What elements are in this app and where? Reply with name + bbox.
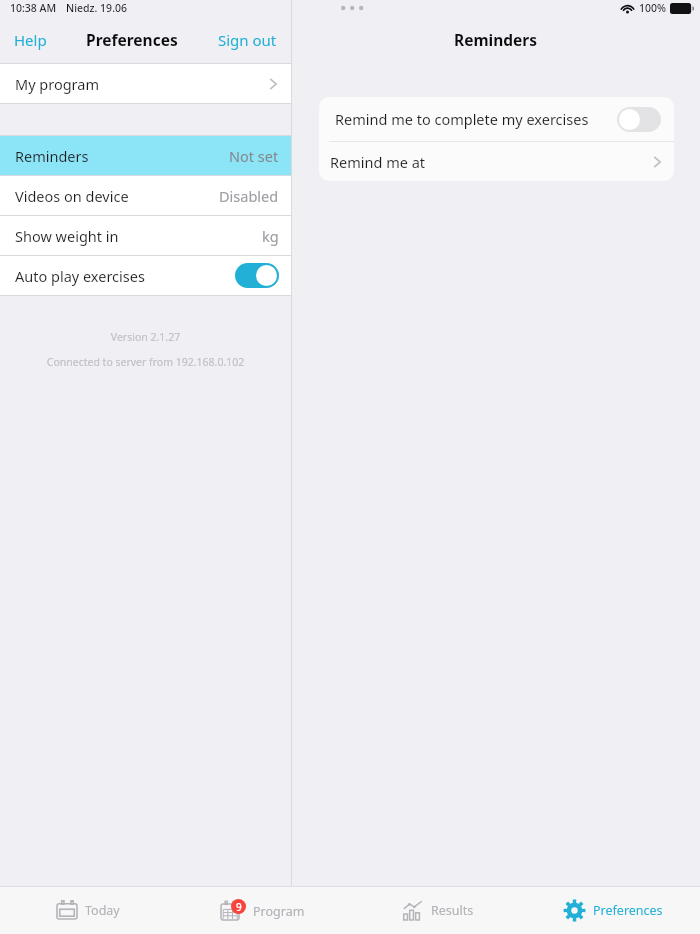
button[interactable]: Videos on device [0,176,291,215]
staticText: Reminders [454,29,538,50]
staticText: Connected to server from 192.168.0.102 [0,355,291,369]
staticText: My program [15,74,100,94]
staticText: Sign out [218,30,277,50]
button[interactable]: Remind me at [319,142,674,181]
staticText: Today [85,902,120,919]
staticText: Help [14,30,47,50]
staticText: Disabled [219,186,279,206]
button[interactable]: Remind me to complete my exercises [319,97,674,141]
button[interactable]: Reminders [0,136,291,175]
button[interactable]: Help [6,24,55,56]
staticText: Not set [229,146,279,166]
staticText: Program [253,903,305,920]
button[interactable]: Auto play exercises [0,256,291,295]
staticText: kg [262,226,279,246]
staticText: 10:38 AM [10,1,57,15]
staticText: 100% [639,1,666,15]
button[interactable]: Today [0,887,175,934]
button[interactable]: Show weight in [0,216,291,255]
button[interactable]: Preferences [525,887,700,934]
staticText: Preferences [593,902,663,919]
staticText: Results [431,902,474,919]
button[interactable]: 9 [175,887,350,934]
button[interactable]: Results [350,887,525,934]
button[interactable]: Toggle on [235,263,279,288]
staticText: 9 [236,900,242,914]
staticText: Reminders [15,146,89,166]
staticText: Remind me at [330,152,426,172]
staticText: Remind me to complete my exercises [335,109,589,129]
staticText: Show weight in [15,226,119,246]
button[interactable]: Toggle off [617,107,661,132]
staticText: Preferences [86,29,178,50]
button[interactable]: My program [0,64,291,103]
button[interactable]: Sign out [210,24,285,56]
staticText: Version 2.1.27 [0,330,291,344]
staticText: Videos on device [15,186,129,206]
staticText: Niedz. 19.06 [66,1,127,15]
staticText: Auto play exercises [15,266,145,286]
